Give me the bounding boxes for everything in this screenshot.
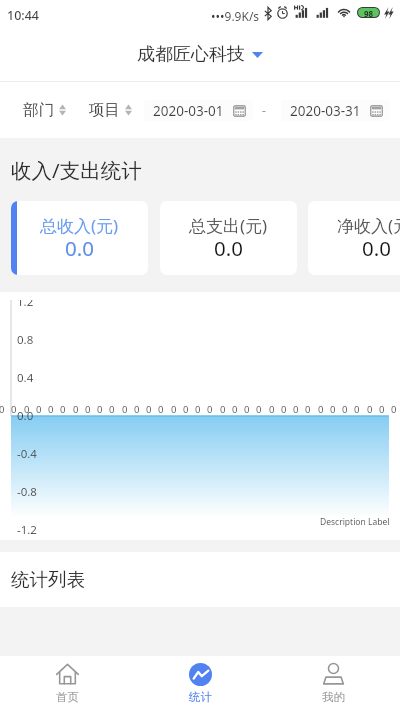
staticText: 0.0: [362, 234, 391, 262]
staticText: 0.0: [214, 234, 243, 262]
staticText: 0.4: [17, 370, 34, 386]
staticText: 0: [281, 403, 287, 416]
staticText: 总收入(元): [40, 214, 119, 237]
staticText: 2020-03-01: [153, 102, 224, 120]
staticText: -0.8: [17, 484, 37, 500]
staticText: Description Label: [320, 516, 390, 528]
staticText: 统计列表: [11, 568, 85, 591]
staticText: 0.8: [17, 332, 34, 348]
button[interactable]: 成都匠心科技: [137, 43, 263, 66]
button[interactable]: 首页: [0, 656, 134, 711]
button[interactable]: 总收入(元): [11, 201, 148, 275]
staticText: 0: [60, 403, 66, 416]
staticText: 0: [293, 403, 299, 416]
staticText: 0: [195, 403, 201, 416]
staticText: 统计: [189, 690, 212, 704]
staticText: •••9.9K/s: [211, 8, 260, 24]
staticText: 0: [158, 403, 164, 416]
staticText: 0: [24, 403, 30, 416]
button[interactable]: 部门: [23, 100, 66, 120]
staticText: 0: [269, 403, 275, 416]
other: 首页: [56, 663, 79, 685]
button[interactable]: 我的: [267, 656, 400, 711]
staticText: 0: [342, 403, 348, 416]
staticText: 0: [134, 403, 140, 416]
staticText: 2020-03-31: [290, 102, 361, 120]
button[interactable]: 净收入(元): [308, 201, 400, 275]
staticText: -: [262, 102, 266, 118]
staticText: 0: [85, 403, 91, 416]
button[interactable]: 项目: [89, 100, 132, 120]
staticText: 部门: [23, 100, 54, 120]
staticText: 0: [146, 403, 152, 416]
staticText: 0: [0, 403, 5, 416]
staticText: 首页: [56, 690, 79, 704]
other: 我的: [323, 663, 344, 685]
staticText: 0: [244, 403, 250, 416]
staticText: 总支出(元): [189, 214, 268, 237]
button[interactable]: 2020-03-01: [144, 100, 253, 121]
staticText: 0: [207, 403, 213, 416]
staticText: 0: [305, 403, 311, 416]
staticText: 0: [183, 403, 189, 416]
staticText: 我的: [322, 690, 345, 704]
staticText: 0: [232, 403, 238, 416]
other: 统计: [189, 663, 212, 686]
staticText: 1.2: [17, 300, 34, 310]
staticText: 0: [354, 403, 360, 416]
staticText: 项目: [89, 100, 120, 120]
staticText: 98: [364, 8, 374, 17]
staticText: 0: [391, 403, 397, 416]
staticText: 成都匠心科技: [137, 43, 245, 66]
staticText: 0: [97, 403, 103, 416]
staticText: 0: [256, 403, 262, 416]
staticText: 0: [109, 403, 115, 416]
staticText: 0: [220, 403, 226, 416]
staticText: 0: [367, 403, 373, 416]
staticText: 10:44: [7, 7, 40, 24]
staticText: 0: [48, 403, 54, 416]
staticText: 0: [171, 403, 177, 416]
staticText: 收入/支出统计: [11, 156, 142, 184]
staticText: 0: [11, 403, 17, 416]
staticText: 0: [318, 403, 324, 416]
staticText: -0.4: [17, 446, 37, 462]
staticText: 0: [73, 403, 79, 416]
staticText: 0.0: [65, 234, 94, 262]
staticText: 0.0: [17, 408, 34, 424]
staticText: 净收入(元): [337, 214, 400, 237]
staticText: 0: [36, 403, 42, 416]
button[interactable]: 统计: [134, 656, 267, 711]
staticText: 0: [330, 403, 336, 416]
button[interactable]: 2020-03-31: [281, 100, 390, 121]
button[interactable]: 总支出(元): [160, 201, 297, 275]
staticText: 0: [379, 403, 385, 416]
staticText: 0: [122, 403, 128, 416]
staticText: -1.2: [17, 522, 37, 538]
